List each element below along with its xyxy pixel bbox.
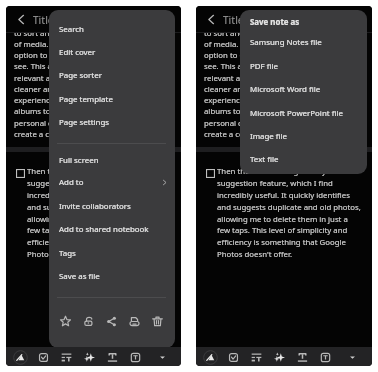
button[interactable]: Text file — [240, 148, 367, 171]
button[interactable]: PDF file — [240, 55, 367, 78]
staticText: relevant albums only, creating a — [204, 73, 372, 84]
button[interactable]: Text box — [127, 349, 143, 365]
button[interactable]: Checklist — [35, 349, 51, 365]
staticText: Page template — [59, 94, 113, 105]
staticText: of media. This gives me the — [14, 39, 181, 50]
staticText: Then there's Samsung Gallery's — [27, 166, 181, 177]
button[interactable]: Lock — [80, 313, 96, 329]
staticText: to sort and organize large amounts — [204, 28, 372, 39]
staticText: relevant albums only, creating a — [14, 73, 181, 84]
staticText: efficiency is something that Google — [217, 237, 372, 248]
staticText: Add to — [59, 177, 84, 188]
staticText: Image file — [250, 131, 288, 142]
staticText: Photos doesn't offer. — [217, 249, 372, 260]
button[interactable]: Tags — [49, 242, 175, 265]
staticText: Search — [59, 24, 84, 35]
staticText: Microsoft PowerPoint file — [250, 108, 343, 119]
button[interactable]: Save as file — [49, 265, 175, 288]
button[interactable]: Invite collaborators — [49, 195, 175, 218]
button[interactable]: Share — [103, 313, 119, 329]
staticText: suggestion feature, which I find — [217, 178, 372, 189]
button[interactable]: Microsoft PowerPoint file — [240, 102, 367, 125]
button[interactable]: AI assist — [271, 349, 287, 365]
button[interactable]: Favourite — [57, 313, 73, 329]
staticText: Tags — [59, 248, 76, 259]
button[interactable]: Text box — [317, 349, 333, 365]
staticText: suggestion feature, which I find — [27, 178, 181, 189]
staticText: Samsung Notes file — [250, 37, 322, 48]
button[interactable]: Text format — [104, 349, 120, 365]
staticText: Invite collaborators — [59, 201, 131, 212]
button[interactable]: Paragraph style — [58, 349, 74, 365]
staticText: allowing me to delete them in just a — [217, 214, 372, 225]
button[interactable]: Microsoft Word file — [240, 78, 367, 101]
staticText: efficiency is something that Google — [27, 237, 181, 248]
button[interactable]: Add to — [49, 171, 175, 194]
staticText: Save as file — [59, 271, 100, 282]
button[interactable]: Samsung Notes file — [240, 31, 367, 54]
staticText: option to choose what I want to — [204, 50, 372, 61]
staticText: personal collections, and I can — [14, 118, 181, 129]
button[interactable]: Text format — [294, 349, 310, 365]
staticText: Then there's Samsung Gallery's — [217, 166, 372, 177]
staticText: and suggests duplicate and old photos, — [27, 202, 181, 213]
button[interactable]: Delete — [149, 313, 165, 329]
button[interactable]: Pen — [202, 349, 218, 365]
button[interactable]: More options — [154, 349, 170, 365]
button[interactable]: Back — [203, 11, 219, 27]
staticText: of media. This gives me the — [204, 39, 372, 50]
button[interactable]: Save note as — [240, 11, 367, 34]
staticText: Photos doesn't offer. — [27, 249, 181, 260]
staticText: incredibly useful. It quickly identifies — [27, 190, 181, 201]
button[interactable]: Print — [126, 313, 142, 329]
staticText: albums to organize photos into — [14, 106, 181, 117]
staticText: cleaner and more personalized — [204, 84, 372, 95]
staticText: experience. I also love creating — [14, 95, 181, 106]
staticText: to sort and organize large amounts — [14, 28, 181, 39]
staticText: PDF file — [250, 61, 278, 72]
staticText: see. This allows me to view — [204, 61, 372, 72]
button[interactable]: Search — [49, 18, 175, 41]
staticText: create a cover for each album. — [204, 129, 372, 140]
staticText: experience. I also love creating — [204, 95, 372, 106]
button[interactable]: More options — [344, 349, 360, 365]
button[interactable]: Checklist — [225, 349, 241, 365]
button[interactable]: Image file — [240, 125, 367, 148]
button[interactable]: Back — [13, 11, 29, 27]
staticText: Title — [223, 13, 244, 27]
staticText: Text file — [250, 154, 279, 165]
staticText: Full screen — [59, 155, 99, 166]
staticText: incredibly useful. It quickly identifies — [217, 190, 372, 201]
staticText: create a cover for each album. — [14, 129, 181, 140]
staticText: and suggests duplicate and old photos, — [217, 202, 372, 213]
staticText: Add to shared notebook — [59, 224, 149, 235]
button[interactable]: Page template — [49, 88, 175, 111]
button[interactable]: Page sorter — [49, 64, 175, 87]
button[interactable] — [15, 168, 26, 179]
staticText: Edit cover — [59, 47, 96, 58]
button[interactable]: AI assist — [81, 349, 97, 365]
button[interactable]: Page settings — [49, 111, 175, 134]
button[interactable]: Full screen — [49, 149, 175, 172]
staticText: allowing me to delete them in just a — [27, 214, 181, 225]
staticText: cleaner and more personalized — [14, 84, 181, 95]
button[interactable]: Add to shared notebook — [49, 218, 175, 241]
staticText: Page settings — [59, 117, 110, 128]
button[interactable]: Edit cover — [49, 41, 175, 64]
staticText: personal collections, and I can — [204, 118, 372, 129]
staticText: see. This allows me to view — [14, 61, 181, 72]
staticText: Page sorter — [59, 70, 102, 81]
button[interactable] — [205, 168, 216, 179]
button[interactable]: Paragraph style — [248, 349, 264, 365]
staticText: few taps. This level of simplicity and — [217, 225, 372, 236]
staticText: few taps. This level of simplicity and — [27, 225, 181, 236]
staticText: Title — [33, 13, 54, 27]
button[interactable]: Pen — [12, 349, 28, 365]
staticText: Microsoft Word file — [250, 84, 321, 95]
staticText: Save note as — [250, 17, 300, 28]
staticText: option to choose what I want to — [14, 50, 181, 61]
staticText: albums to organize photos into — [204, 106, 372, 117]
